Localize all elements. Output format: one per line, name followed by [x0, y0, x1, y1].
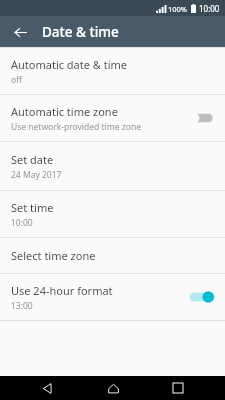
staticText: 13:00 [11, 300, 33, 312]
staticText: 24 May 2017 [11, 169, 62, 181]
button[interactable]: Toggle off [186, 108, 216, 128]
button[interactable]: Back [7, 19, 33, 45]
staticText: 100% [168, 4, 188, 14]
staticText: Automatic time zone [11, 104, 118, 119]
button[interactable]: Home [95, 376, 131, 400]
staticText: 10:00 [11, 217, 33, 229]
button[interactable]: Use 24-hour format [0, 274, 225, 320]
staticText: Select time zone [11, 248, 96, 263]
button[interactable]: Automatic time zone [0, 95, 225, 141]
button[interactable]: Recent apps [160, 376, 196, 400]
button[interactable]: Select time zone [0, 238, 225, 273]
staticText: 10:00 [199, 3, 220, 14]
button[interactable]: Toggle on [186, 287, 216, 307]
staticText: Set time [11, 200, 54, 215]
staticText: Date & time [42, 23, 119, 41]
staticText: Use network-provided time zone [11, 121, 141, 133]
staticText: Set date [11, 152, 54, 167]
button[interactable]: Back [29, 376, 65, 400]
button[interactable]: Set date [0, 142, 225, 190]
staticText: Automatic date & time [11, 57, 128, 72]
staticText: off [11, 74, 22, 86]
button[interactable]: Set time [0, 191, 225, 237]
button[interactable]: Automatic date & time [0, 48, 225, 94]
staticText: Use 24-hour format [11, 283, 113, 298]
